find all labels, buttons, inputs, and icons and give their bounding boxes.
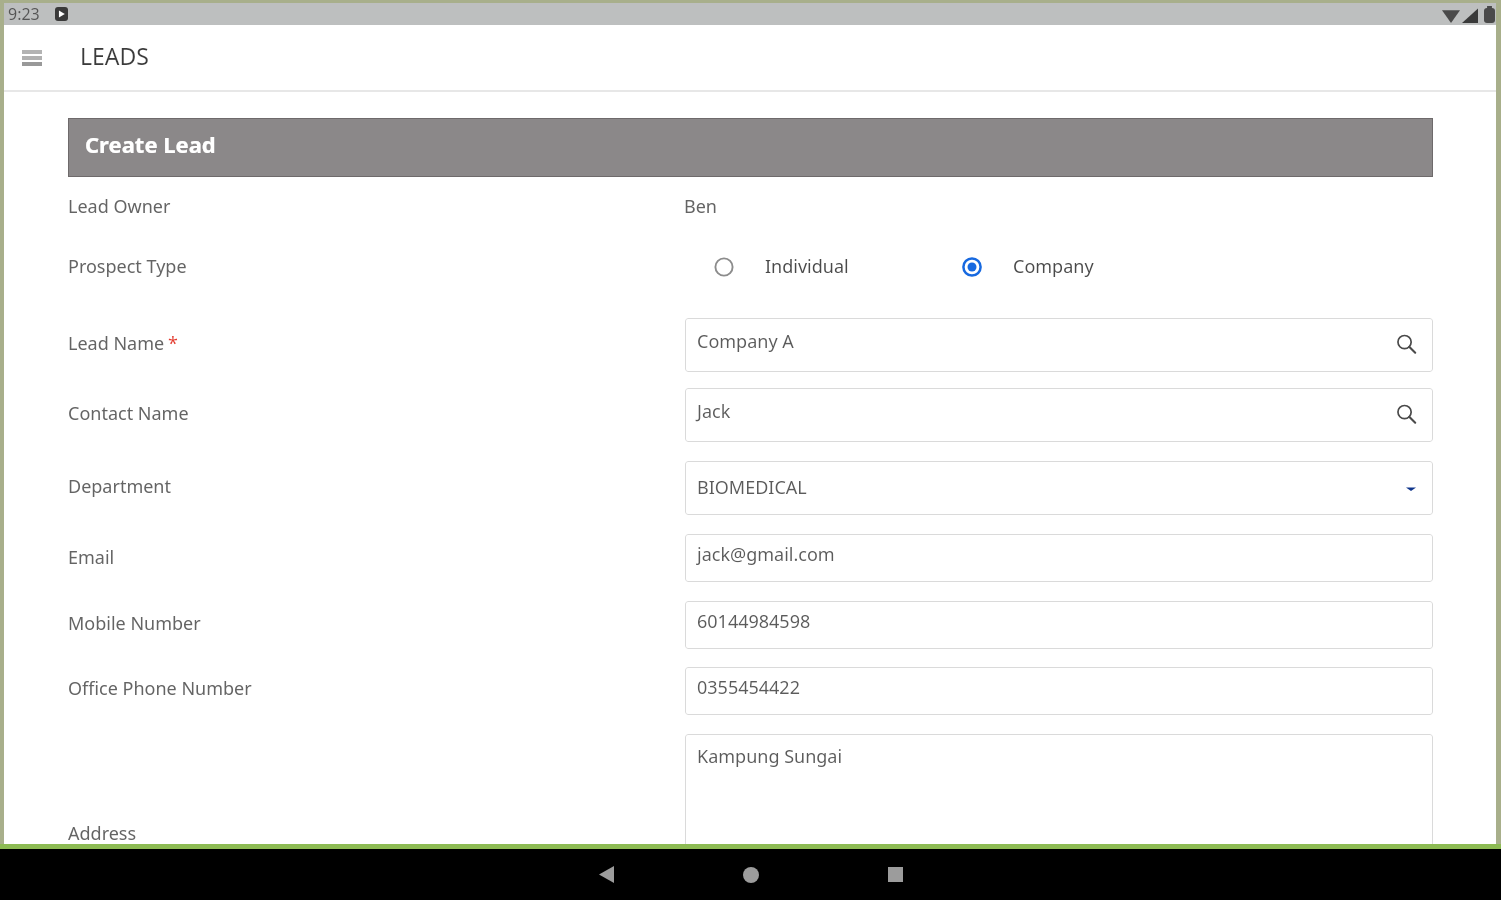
- staticText: Department: [68, 474, 171, 499]
- button[interactable]: Open navigation menu: [10, 36, 54, 80]
- button[interactable]: Recent apps: [856, 849, 934, 900]
- button[interactable]: Individual: [713, 252, 849, 281]
- button[interactable]: Jack: [685, 388, 1433, 442]
- button[interactable]: BIOMEDICAL: [685, 461, 1433, 515]
- staticText: Company: [1013, 254, 1094, 279]
- staticText: Kampung Sungai: [697, 744, 843, 769]
- staticText: Individual: [765, 254, 849, 279]
- staticText: Office Phone Number: [68, 676, 252, 701]
- button[interactable]: Back: [567, 849, 645, 900]
- staticText: Contact Name: [68, 401, 189, 426]
- staticText: Ben: [684, 194, 717, 219]
- staticText: jack@gmail.com: [697, 542, 835, 567]
- button[interactable]: 0355454422: [685, 667, 1433, 715]
- button[interactable]: Search: [1394, 402, 1418, 426]
- staticText: 60144984598: [697, 609, 811, 634]
- staticText: BIOMEDICAL: [697, 475, 807, 500]
- button[interactable]: Kampung Sungai: [685, 734, 1433, 864]
- button[interactable]: Company A: [685, 318, 1433, 372]
- staticText: Lead Owner: [68, 194, 171, 219]
- button[interactable]: Home: [712, 849, 790, 900]
- staticText: Email: [68, 545, 115, 570]
- staticText: Address: [68, 821, 137, 846]
- staticText: Company A: [697, 329, 794, 354]
- button[interactable]: Search: [1394, 332, 1418, 356]
- staticText: Jack: [697, 399, 731, 424]
- staticText: Create Lead: [85, 129, 216, 159]
- staticText: 0355454422: [697, 675, 800, 700]
- staticText: LEADS: [80, 40, 149, 71]
- staticText: Prospect Type: [68, 254, 187, 279]
- staticText: Lead Name: [68, 331, 165, 356]
- button[interactable]: jack@gmail.com: [685, 534, 1433, 582]
- button[interactable]: Company: [961, 252, 1094, 281]
- staticText: 9:23: [8, 3, 40, 25]
- button[interactable]: Open department list: [1406, 484, 1416, 494]
- staticText: *: [168, 331, 178, 356]
- button[interactable]: 60144984598: [685, 601, 1433, 649]
- staticText: Mobile Number: [68, 611, 201, 636]
